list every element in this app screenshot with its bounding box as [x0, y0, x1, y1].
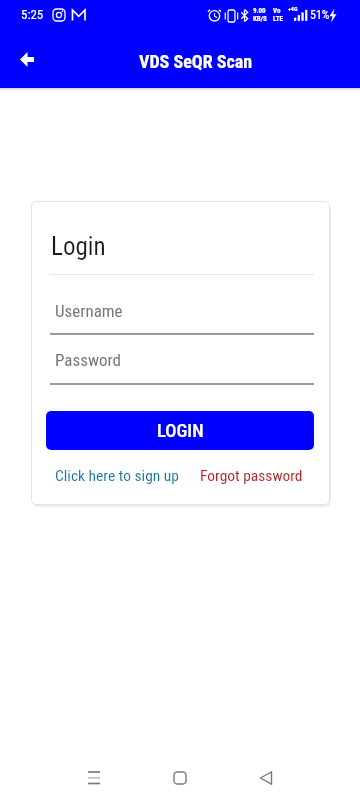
- button[interactable]: [240, 744, 360, 800]
- button[interactable]: [6, 45, 34, 73]
- staticText: 5:25: [21, 7, 44, 22]
- staticText: Username: [55, 301, 123, 321]
- staticText: Vo LTE: [273, 7, 283, 23]
- staticText: 9.00 KB/S: [253, 7, 267, 23]
- staticText: Login: [51, 232, 106, 261]
- staticText: 51%: [310, 8, 330, 22]
- staticText: Password: [55, 350, 122, 370]
- button[interactable]: Click here to sign up: [55, 467, 179, 485]
- staticText: LOGIN: [157, 420, 204, 442]
- staticText: VDS SeQR Scan: [139, 51, 253, 72]
- button[interactable]: Forgot password: [200, 467, 303, 485]
- button[interactable]: LOGIN: [46, 411, 314, 450]
- button[interactable]: [120, 744, 240, 800]
- button[interactable]: [0, 744, 120, 800]
- staticText: +4G: [288, 5, 298, 12]
